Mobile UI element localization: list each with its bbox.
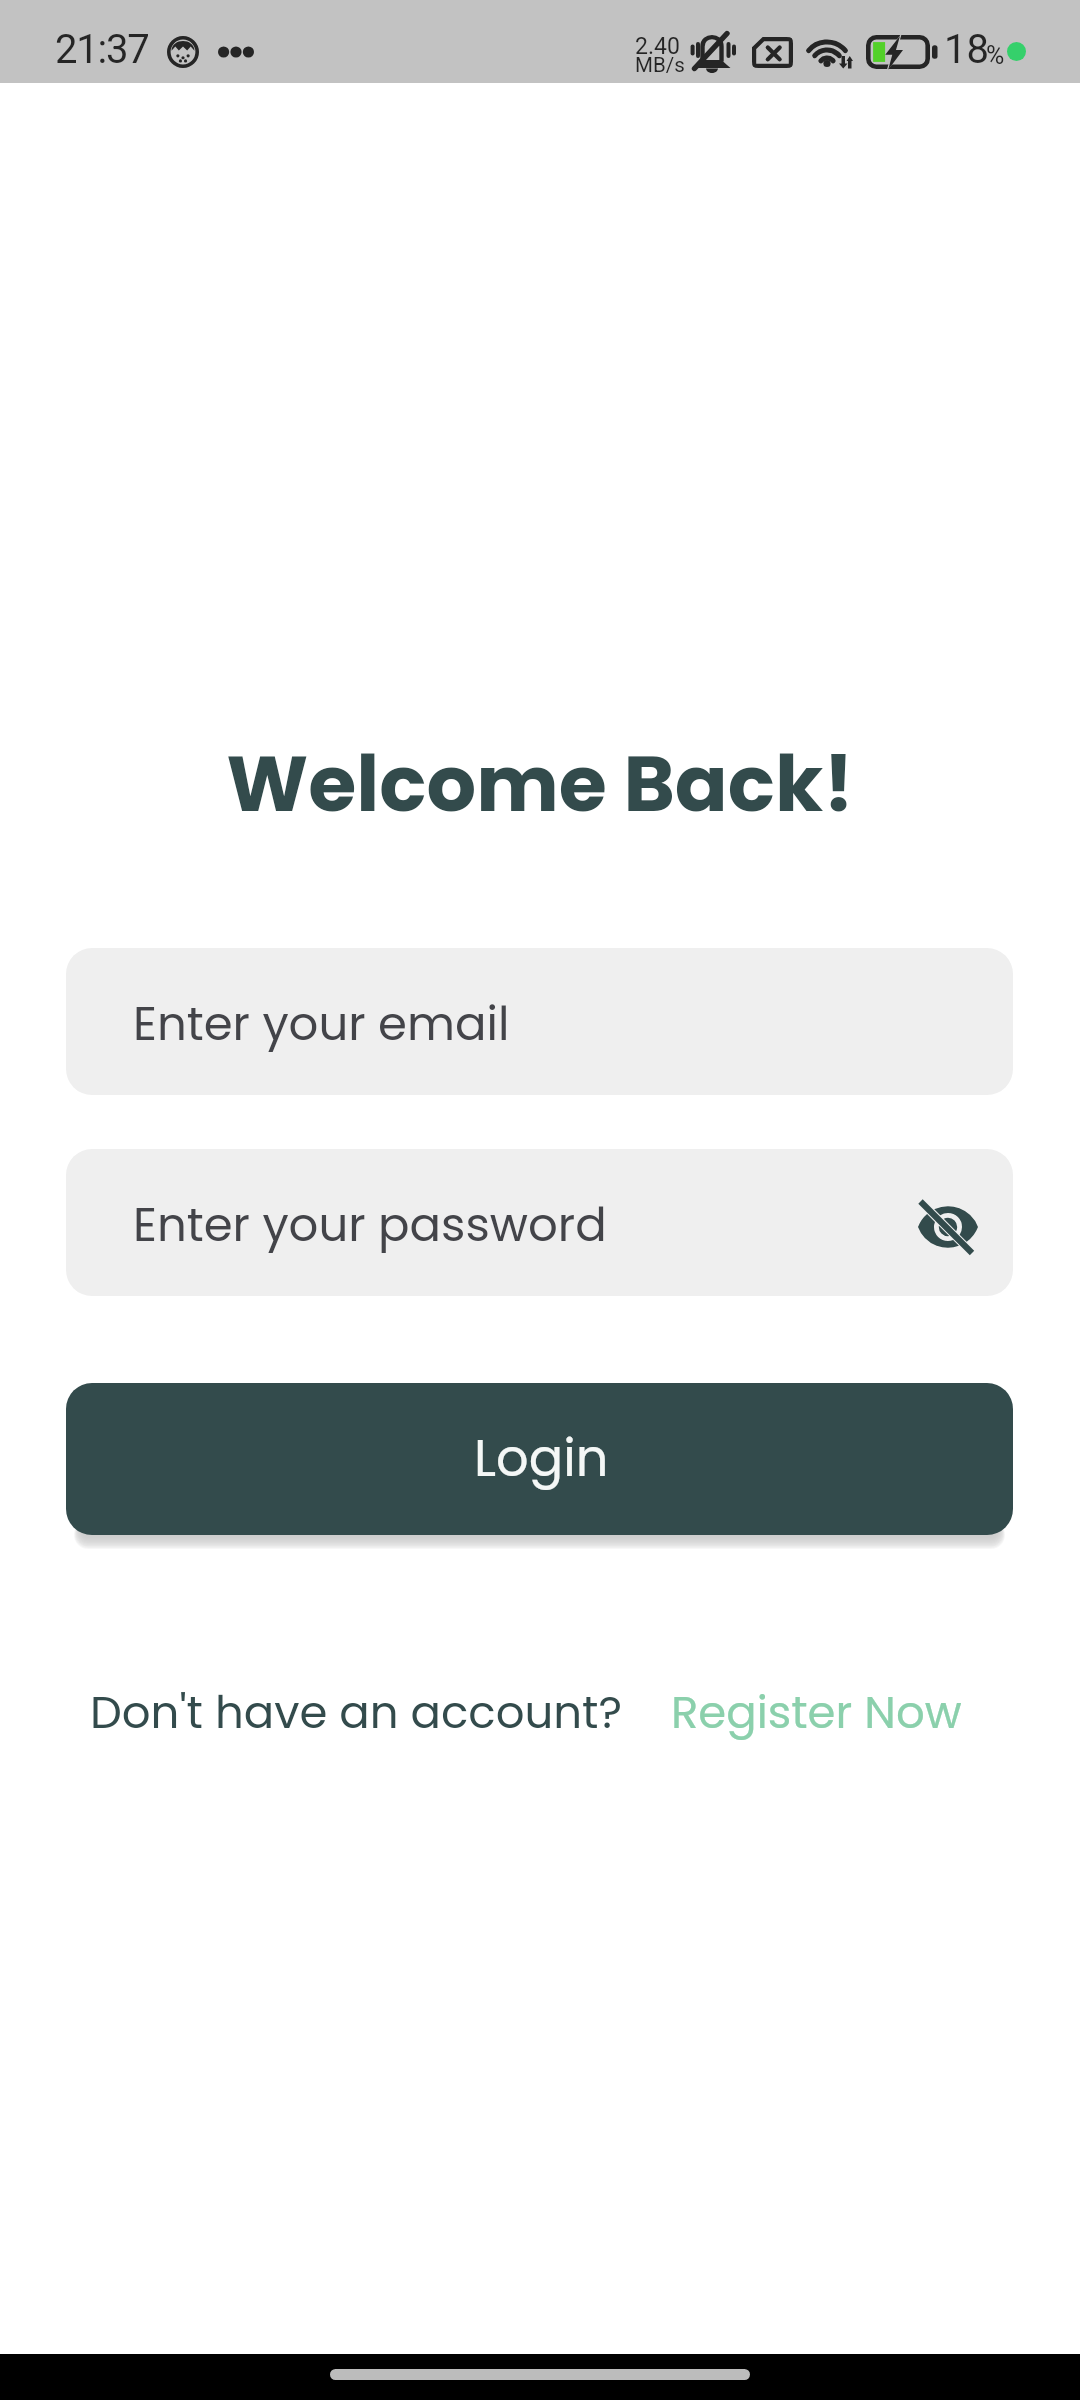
- staticText: Enter your email: [133, 991, 510, 1056]
- staticText: Register Now: [671, 1681, 962, 1744]
- button[interactable]: Register Now: [671, 1681, 962, 1744]
- button[interactable]: Login: [66, 1383, 1013, 1535]
- staticText: 18: [944, 26, 989, 73]
- button[interactable]: Show password: [883, 1149, 1013, 1296]
- staticText: %: [986, 41, 1005, 70]
- button[interactable]: Enter your password: [66, 1149, 1013, 1296]
- staticText: Enter your password: [133, 1192, 607, 1257]
- staticText: Login: [474, 1422, 609, 1493]
- staticText: Welcome Back!: [226, 729, 854, 838]
- staticText: Don't have an account?: [90, 1681, 622, 1744]
- staticText: MB/s: [635, 53, 685, 77]
- staticText: 2.40: [635, 33, 680, 60]
- staticText: 21:37: [55, 26, 149, 73]
- button[interactable]: Enter your email: [66, 948, 1013, 1095]
